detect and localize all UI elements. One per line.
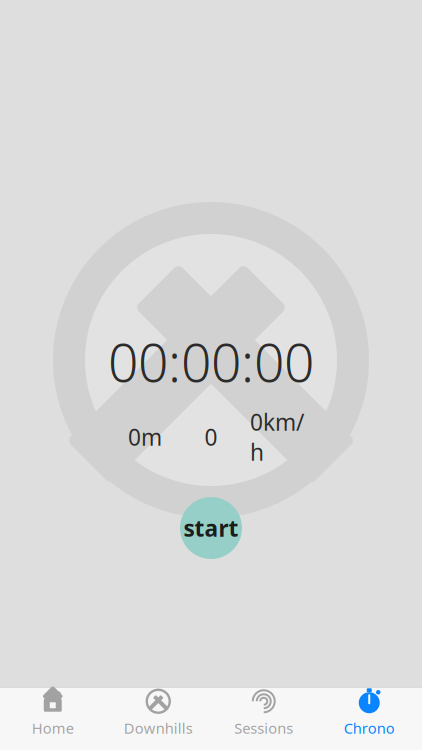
staticText: start [183, 513, 238, 543]
button[interactable]: start [180, 497, 242, 559]
staticText: Chrono [344, 718, 395, 738]
button[interactable]: Sessions [211, 688, 316, 737]
button[interactable]: Home [0, 688, 105, 737]
button[interactable]: Chrono [316, 688, 422, 737]
staticText: Home [32, 718, 74, 738]
staticText: 0 [204, 422, 217, 452]
staticText: Sessions [234, 718, 293, 738]
staticText: 0m [128, 422, 162, 452]
staticText: 00:00:00 [108, 326, 314, 397]
button[interactable]: Downhills [105, 688, 211, 737]
staticText: Downhills [124, 718, 193, 738]
staticText: 0km/h [250, 407, 304, 467]
